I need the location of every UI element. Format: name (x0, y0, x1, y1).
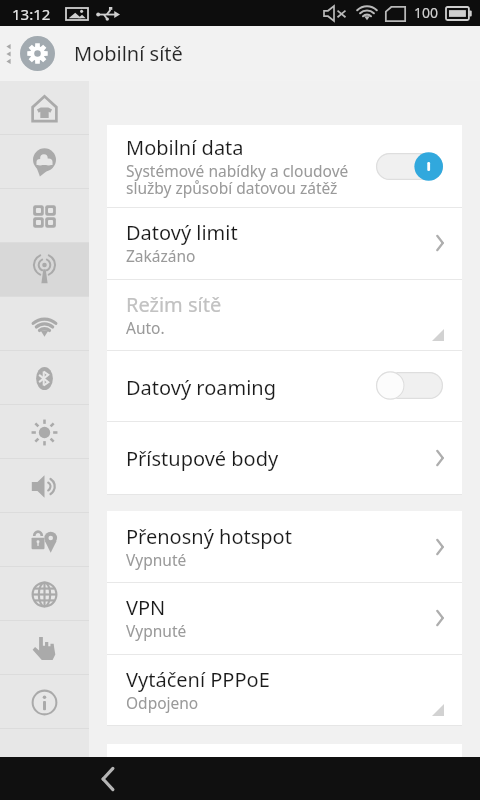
staticText: Vypnuté (126, 549, 187, 570)
button[interactable]: Mobile networks (0, 243, 89, 297)
button[interactable]: Režim sítě (107, 279, 462, 350)
staticText: Mobilní sítě (74, 40, 183, 67)
button[interactable]: Bluetooth (0, 351, 89, 405)
button[interactable]: Sound (0, 459, 89, 513)
staticText: Přenosný hotspot (126, 523, 292, 550)
button[interactable]: About (0, 675, 89, 729)
staticText: Režim sítě (126, 291, 222, 318)
button[interactable]: Mobilní data (107, 125, 462, 207)
button[interactable]: Datový limit (107, 207, 462, 279)
staticText: Zakázáno (126, 245, 196, 266)
staticText: VPN (126, 594, 166, 621)
button[interactable]: Home (0, 81, 89, 135)
button[interactable]: Vytáčení PPPoE (107, 654, 462, 725)
button[interactable]: Gestures (0, 621, 89, 675)
button[interactable]: Wi-Fi (0, 297, 89, 351)
button[interactable]: Apps (0, 189, 89, 243)
button[interactable]: Privacy (0, 513, 89, 567)
button[interactable]: Přenosný hotspot (107, 511, 462, 582)
staticText: 13:12 (12, 4, 51, 24)
staticText: Auto. (126, 317, 165, 338)
button[interactable]: Cloud (0, 135, 89, 189)
staticText: Vypnuté (126, 620, 187, 641)
button[interactable]: Přístupové body (107, 421, 462, 494)
staticText: Datový limit (126, 219, 238, 246)
staticText: Mobilní data (126, 134, 244, 161)
button[interactable]: Datový roaming (107, 350, 462, 421)
button[interactable]: Display (0, 405, 89, 459)
button[interactable]: Settings (20, 36, 55, 71)
button[interactable]: Back (80, 757, 136, 800)
staticText: Datový roaming (126, 374, 276, 401)
staticText: Přístupové body (126, 445, 279, 472)
staticText: Systémové nabídky a cloudové služby způs… (126, 160, 349, 199)
staticText: Vytáčení PPPoE (126, 666, 270, 693)
staticText: 100 (414, 3, 439, 22)
button[interactable]: Language (0, 567, 89, 621)
button[interactable]: VPN (107, 582, 462, 654)
staticText: Odpojeno (126, 692, 199, 713)
